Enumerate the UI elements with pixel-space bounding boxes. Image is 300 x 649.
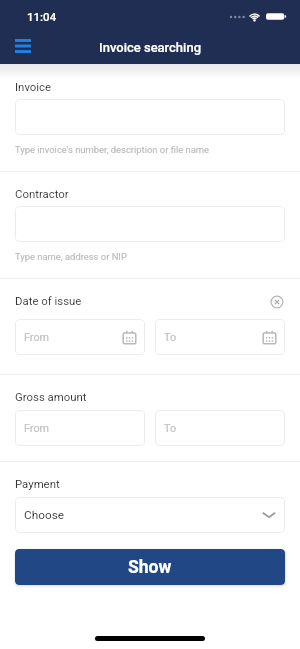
button[interactable]: Show xyxy=(15,549,285,585)
staticText: Show xyxy=(128,557,172,578)
staticText: From xyxy=(24,331,50,344)
button[interactable] xyxy=(15,99,285,135)
staticText: From xyxy=(24,422,50,435)
staticText: Type invoice's number, description or fi… xyxy=(15,144,209,155)
staticText: Choose xyxy=(24,508,64,522)
staticText: To xyxy=(164,331,177,344)
button[interactable]: To xyxy=(155,319,285,355)
staticText: Type name, address or NIP xyxy=(15,251,127,262)
button[interactable]: Open navigation menu xyxy=(7,30,39,62)
button[interactable]: Clear date of issue xyxy=(265,290,289,314)
button[interactable] xyxy=(15,206,285,242)
staticText: To xyxy=(164,422,177,435)
staticText: Contractor xyxy=(15,187,69,200)
button[interactable]: From xyxy=(15,410,145,446)
staticText: Gross amount xyxy=(15,390,87,403)
button[interactable]: Choose xyxy=(15,497,285,533)
staticText: Invoice xyxy=(15,80,52,93)
staticText: Date of issue xyxy=(15,294,82,307)
staticText: Payment xyxy=(15,477,60,490)
button[interactable]: From xyxy=(15,319,145,355)
staticText: 11:04 xyxy=(27,10,57,23)
staticText: Invoice searching xyxy=(99,40,202,55)
button[interactable]: To xyxy=(155,410,285,446)
